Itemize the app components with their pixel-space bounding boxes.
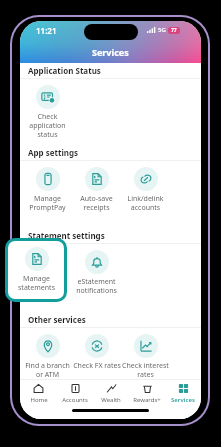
staticText: Manage PromptPay: [29, 194, 66, 212]
staticText: Rewards+: [133, 396, 161, 404]
button[interactable]: Manage statements: [5, 238, 67, 302]
staticText: Services: [171, 396, 195, 404]
button[interactable]: eStatement notifications: [72, 250, 121, 295]
staticText: Wealth: [101, 396, 121, 404]
button[interactable]: Accounts: [57, 383, 93, 404]
button[interactable]: Link/delink accounts: [121, 167, 170, 212]
button[interactable]: Manage PromptPay: [23, 167, 72, 212]
button[interactable]: Auto-save receipts: [72, 167, 121, 212]
button[interactable]: Home: [20, 383, 57, 404]
staticText: 77: [171, 27, 177, 34]
staticText: Statement settings: [28, 230, 105, 241]
button[interactable]: Check FX rates: [72, 334, 121, 371]
button[interactable]: Rewards+: [129, 383, 165, 404]
staticText: Home: [30, 396, 48, 404]
button[interactable]: Services: [165, 383, 201, 404]
button[interactable]: Check application status: [23, 85, 72, 139]
staticText: 11:21: [36, 25, 57, 36]
staticText: Check interest rates: [122, 361, 169, 379]
staticText: Check application status: [29, 112, 66, 139]
staticText: Check FX rates: [73, 361, 121, 371]
staticText: Find a branch or ATM: [25, 361, 70, 379]
staticText: App settings: [28, 147, 79, 158]
staticText: Manage statements: [18, 274, 55, 292]
staticText: Services: [92, 46, 129, 58]
staticText: Other services: [28, 314, 86, 325]
button[interactable]: Check interest rates: [121, 334, 170, 379]
button[interactable]: Wealth: [93, 383, 129, 404]
staticText: Link/delink accounts: [127, 194, 164, 212]
staticText: Application Status: [28, 65, 101, 76]
staticText: Auto-save receipts: [80, 194, 113, 212]
button[interactable]: Manage statements: [23, 250, 72, 295]
button[interactable]: Find a branch or ATM: [23, 334, 72, 379]
staticText: Accounts: [62, 396, 88, 404]
staticText: eStatement notifications: [76, 277, 117, 295]
staticText: 5G: [158, 26, 166, 34]
staticText: Manage statements: [29, 277, 66, 295]
